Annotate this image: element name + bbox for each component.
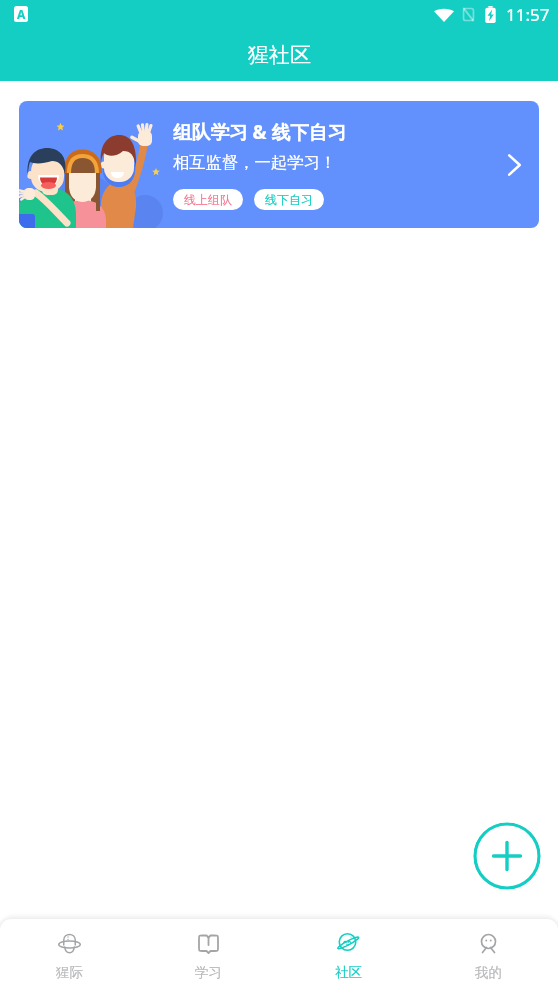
staticText: 猩际 [56,964,83,981]
button[interactable]: 猩际 [0,919,139,992]
button[interactable]: 组队学习 & 线下自习 [19,101,539,228]
staticText: 相互监督，一起学习！ [173,152,336,173]
staticText: 11:57 [506,3,550,26]
button[interactable]: 我的 [418,919,558,992]
button[interactable]: 学习 [139,919,278,992]
button[interactable]: 社区 [278,919,418,992]
staticText: 学习 [195,964,222,981]
button[interactable]: Add post [473,822,541,890]
staticText: 线上组队 [184,192,232,207]
button[interactable]: 线下自习 [254,189,324,210]
staticText: A [17,6,26,22]
button[interactable]: 线上组队 [173,189,243,210]
staticText: 我的 [475,964,502,981]
staticText: 组队学习 & 线下自习 [173,119,347,145]
staticText: 社区 [335,964,362,981]
staticText: 线下自习 [265,192,313,207]
staticText: 猩社区 [248,42,311,68]
